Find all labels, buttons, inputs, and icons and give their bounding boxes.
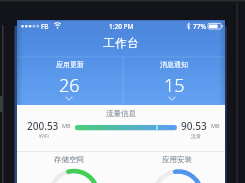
staticText: WiFi: [39, 133, 49, 140]
staticText: FB: [41, 22, 49, 31]
staticText: 存储空间: [54, 155, 84, 164]
staticText: 15: [164, 73, 185, 95]
staticText: 应用安装: [162, 155, 192, 164]
staticText: 流量信息: [106, 109, 136, 118]
staticText: 消息通知: [160, 60, 188, 69]
staticText: MB: [62, 122, 71, 129]
staticText: 90.53: [181, 119, 207, 131]
staticText: 1:20 PM: [109, 22, 134, 31]
button[interactable]: 应用更新: [17, 57, 122, 104]
button[interactable]: 消息通知: [123, 57, 225, 104]
staticText: 77%: [193, 22, 206, 31]
staticText: 工作台: [103, 36, 139, 50]
button[interactable]: 200.53: [23, 119, 63, 131]
staticText: 200.53: [27, 119, 59, 131]
button[interactable]: 存储空间: [17, 152, 121, 183]
staticText: 应用更新: [56, 60, 84, 69]
staticText: 流量: [191, 133, 201, 139]
staticText: MB: [211, 122, 220, 129]
button[interactable]: 应用安装: [121, 152, 225, 183]
staticText: 26: [59, 73, 80, 95]
